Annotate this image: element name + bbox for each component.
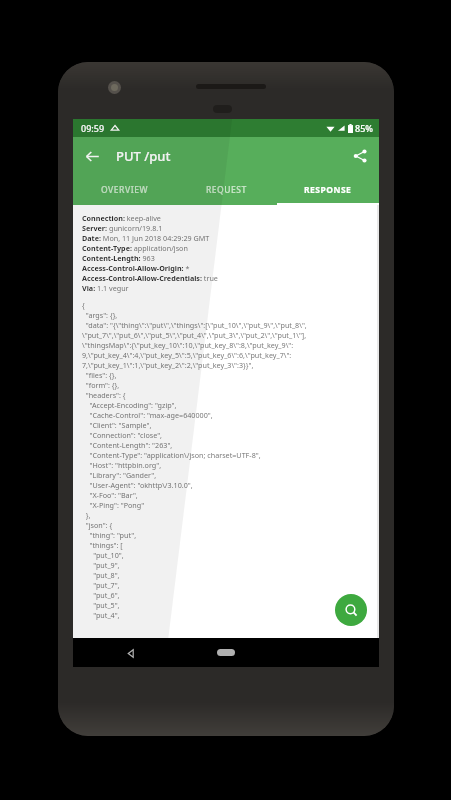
staticText: "form": {}, [82, 380, 120, 390]
staticText: 85% [355, 122, 373, 134]
staticText: "Library": "Gander", [82, 470, 157, 480]
staticText: "put_4", [82, 610, 120, 620]
button[interactable]: Home [217, 649, 235, 656]
staticText: "headers": { [82, 390, 126, 400]
staticText: "thing": "put", [82, 530, 137, 540]
staticText: 7,\"put_key_1\":1,\"put_key_2\":2,\"put_… [82, 360, 254, 370]
staticText: "Host": "httpbin.org", [82, 460, 162, 470]
staticText: REQUEST [206, 184, 247, 196]
staticText: Date: Mon, 11 Jun 2018 04:29:29 GMT [82, 233, 210, 243]
button[interactable]: Share [345, 141, 375, 171]
staticText: "put_6", [82, 590, 120, 600]
staticText: PUT /put [116, 147, 171, 165]
staticText: "put_9", [82, 560, 120, 570]
staticText: "X-Foo": "Bar", [82, 490, 138, 500]
staticText: "put_10", [82, 550, 124, 560]
staticText: "args": {}, [82, 310, 118, 320]
staticText: \"put_7\",\"put_6\",\"put_5\",\"put_4\",… [82, 330, 307, 340]
staticText: "json": { [82, 520, 113, 530]
staticText: Connection: keep-alive [82, 213, 161, 223]
staticText: Server: gunicorn/19.8.1 [82, 223, 163, 233]
staticText: "things": [ [82, 540, 123, 550]
staticText: }, [82, 510, 91, 520]
staticText: "put_7", [82, 580, 120, 590]
staticText: Content-Type: application/json [82, 243, 188, 253]
staticText: 9,\"put_key_4\":4,\"put_key_5\":5,\"put_… [82, 350, 292, 360]
staticText: \"thingsMap\":{\"put_key_10\":10,\"put_k… [82, 340, 294, 350]
staticText: Via: 1.1 vegur [82, 283, 129, 293]
button[interactable]: REQUEST [175, 175, 277, 205]
button[interactable]: Back [119, 642, 141, 664]
staticText: "Content-Length": "263", [82, 440, 173, 450]
staticText: "put_8", [82, 570, 120, 580]
staticText: RESPONSE [304, 184, 352, 196]
staticText: "Client": "Sample", [82, 420, 152, 430]
button[interactable]: RESPONSE [277, 175, 379, 205]
staticText: Content-Length: 963 [82, 253, 155, 263]
button[interactable]: OVERVIEW [73, 175, 175, 205]
staticText: { [82, 300, 85, 310]
staticText: "data": "{\"thing\":\"put\",\"things\":[… [82, 320, 307, 330]
staticText: OVERVIEW [101, 184, 148, 196]
staticText: "Cache-Control": "max-age=640000", [82, 410, 213, 420]
button[interactable]: Search [335, 594, 367, 626]
button[interactable]: Back [77, 141, 107, 171]
staticText: "Content-Type": "application\/json; char… [82, 450, 261, 460]
staticText: Access-Control-Allow-Origin: * [82, 263, 190, 273]
staticText: "put_5", [82, 600, 120, 610]
staticText: 09:59 [81, 122, 105, 134]
staticText: Access-Control-Allow-Credentials: true [82, 273, 218, 283]
staticText: "Connection": "close", [82, 430, 163, 440]
staticText: "User-Agent": "okhttp\/3.10.0", [82, 480, 193, 490]
staticText: "files": {}, [82, 370, 117, 380]
staticText: "Accept-Encoding": "gzip", [82, 400, 177, 410]
staticText: "X-Ping": "Pong" [82, 500, 145, 510]
